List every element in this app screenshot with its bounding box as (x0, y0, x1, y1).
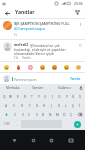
button[interactable]: T (28, 92, 35, 101)
button[interactable]: Emoji (48, 63, 60, 72)
staticText: BJK ŞAMPİYON ŞAMPİYONU FULL (14, 21, 70, 26)
button[interactable]: J (48, 101, 55, 110)
button[interactable]: Emoji (24, 63, 36, 72)
button[interactable]: Tamam (25, 84, 51, 92)
button[interactable]: Voice input (77, 84, 85, 92)
button[interactable]: D (18, 101, 26, 110)
button[interactable]: Ç (68, 110, 75, 119)
button[interactable]: W (7, 92, 14, 101)
staticText: I (52, 95, 54, 99)
staticText: M (56, 113, 59, 117)
button[interactable]: Q (1, 92, 7, 101)
button[interactable]: Ü (77, 92, 84, 101)
button[interactable]: Yanıtla (22, 56, 31, 60)
staticText: olmasındadır. Bence iyiydi (14, 51, 54, 55)
staticText: #ChampionLeague (14, 26, 46, 31)
button[interactable]: Ş (69, 101, 76, 110)
staticText: T (31, 95, 33, 99)
staticText: C (28, 113, 31, 117)
button[interactable]: Y (35, 92, 42, 101)
staticText: D (21, 104, 24, 108)
button[interactable]: Ö (61, 110, 68, 119)
staticText: S (13, 104, 15, 108)
staticText: Q (3, 95, 6, 99)
button[interactable]: A (2, 101, 10, 110)
button[interactable]: M (54, 110, 61, 119)
staticText: O (58, 95, 61, 99)
button[interactable]: S (10, 101, 18, 110)
button[interactable]: Emoji (60, 63, 72, 72)
button[interactable]: , (13, 120, 20, 128)
staticText: 12s (14, 56, 19, 60)
staticText: A (5, 104, 8, 108)
button[interactable]: mefes62 (0, 40, 85, 61)
button[interactable]: Back (3, 9, 11, 17)
staticText: R (24, 95, 26, 99)
button[interactable]: More options (77, 21, 83, 27)
staticText: 1s (14, 33, 17, 37)
button[interactable]: O (56, 92, 63, 101)
staticText: H (43, 104, 46, 108)
staticText: Ş (72, 104, 74, 108)
button[interactable]: X (19, 110, 26, 119)
staticText: hoşlandığı, sözleriyle ve yaptıkları (14, 47, 66, 51)
button[interactable]: Emoji (36, 63, 48, 72)
button[interactable]: Z (11, 110, 19, 119)
staticText: Z (14, 113, 16, 117)
button[interactable]: Kullanıcı (51, 84, 77, 92)
button[interactable]: Emoji (1, 63, 12, 72)
staticText: V (36, 113, 38, 117)
button[interactable]: Ğ (70, 92, 77, 101)
button[interactable]: Merhaba (0, 84, 25, 92)
staticText: G (36, 104, 39, 108)
button[interactable]: F (26, 101, 34, 110)
button[interactable]: Yanıtla (69, 77, 82, 81)
staticText: . (66, 122, 67, 126)
button[interactable]: H (41, 101, 48, 110)
staticText: Yanıtlar (15, 9, 35, 16)
staticText: Ö (63, 113, 66, 117)
button[interactable]: Emoji (12, 63, 24, 72)
staticText: W (9, 95, 12, 99)
staticText: ?123 (4, 122, 10, 126)
staticText: B (42, 113, 45, 117)
button[interactable]: U (42, 92, 49, 101)
staticText: F (29, 104, 31, 108)
button[interactable]: Filter (73, 8, 82, 17)
button[interactable]: Home (29, 136, 38, 145)
button[interactable]: Keyboard (66, 136, 75, 145)
button[interactable]: P (63, 92, 70, 101)
button[interactable]: R (21, 92, 28, 101)
button[interactable]: More options (77, 42, 83, 48)
staticText: Merhaba (6, 86, 20, 90)
staticText: Ğ (72, 95, 75, 99)
staticText: Ç (70, 113, 73, 117)
staticText: K (58, 104, 60, 108)
button[interactable]: Shift (1, 110, 11, 119)
button[interactable]: Send (74, 121, 81, 128)
button[interactable]: ?123 (1, 120, 13, 128)
button[interactable]: K (55, 101, 62, 110)
button[interactable]: L (62, 101, 69, 110)
button[interactable]: Recents (47, 136, 56, 145)
button[interactable]: C (26, 110, 33, 119)
button[interactable]: N (47, 110, 54, 119)
button[interactable]: BJK ŞAMPİYON ŞAMPİYONU FULL (0, 19, 85, 39)
button[interactable]: Backspace (75, 110, 84, 119)
staticText: @Sonukand en çok (30, 43, 60, 47)
staticText: Kullanıcı (58, 86, 71, 90)
staticText: Ü (79, 95, 82, 99)
button[interactable]: G (34, 101, 41, 110)
staticText: 20:06 (74, 1, 83, 6)
button[interactable]: V (33, 110, 40, 119)
staticText: Yanıtınızı yazın (14, 77, 37, 81)
button[interactable]: Back (10, 136, 19, 145)
button[interactable]: Yanıtınızı yazın (12, 75, 69, 83)
button[interactable]: I (49, 92, 56, 101)
button[interactable]: E (14, 92, 21, 101)
button[interactable]: İ (76, 101, 83, 110)
button[interactable]: Emoji (72, 63, 84, 72)
button[interactable]: B (40, 110, 47, 119)
